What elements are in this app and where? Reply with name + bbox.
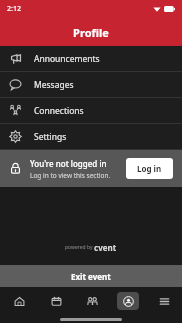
staticText: Exit event xyxy=(71,271,111,282)
button[interactable]: Profile xyxy=(110,287,146,315)
staticText: Profile xyxy=(73,25,109,40)
staticText: powered by xyxy=(65,244,94,251)
staticText: cvent xyxy=(94,242,117,253)
button[interactable]: Exit event xyxy=(0,265,182,287)
staticText: You're not logged in xyxy=(30,158,107,169)
button[interactable]: More xyxy=(146,287,182,315)
staticText: Connections xyxy=(34,105,84,117)
button[interactable]: Attendees xyxy=(74,287,110,315)
button[interactable]: Home xyxy=(0,287,37,315)
button[interactable]: Log in xyxy=(126,158,173,179)
button[interactable]: Connections xyxy=(0,98,182,123)
button[interactable]: Messages xyxy=(0,72,182,97)
staticText: Log in xyxy=(137,163,162,174)
button[interactable]: You're not logged in xyxy=(0,150,182,187)
button[interactable]: Schedule xyxy=(37,287,74,315)
staticText: Messages xyxy=(34,79,74,91)
staticText: Announcements xyxy=(34,53,100,65)
button[interactable]: Announcements xyxy=(0,46,182,71)
staticText: Settings xyxy=(34,131,67,143)
staticText: Log in to view this section. xyxy=(30,171,111,180)
staticText: 2:12 xyxy=(7,4,21,14)
button[interactable]: Settings xyxy=(0,124,182,149)
